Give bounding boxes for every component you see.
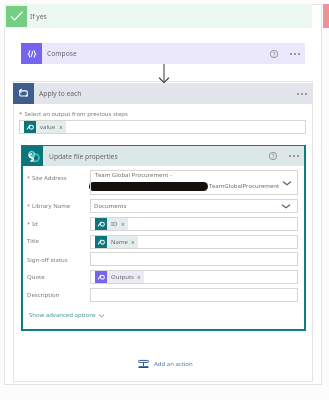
staticText: Title — [27, 237, 39, 245]
button[interactable]: Name — [90, 235, 298, 249]
staticText: Update file properties — [49, 152, 118, 161]
staticText: Name — [111, 238, 128, 246]
staticText: value — [40, 123, 56, 131]
button[interactable] — [90, 288, 298, 302]
staticText: * — [27, 220, 31, 227]
staticText: Description — [27, 291, 60, 299]
button[interactable]: Add an action — [138, 358, 193, 369]
staticText: Sign-off status — [27, 256, 68, 264]
button[interactable]: More options — [295, 88, 309, 100]
staticText: Quote — [27, 273, 45, 281]
staticText: ID — [111, 220, 118, 228]
staticText: Show advanced options — [29, 311, 96, 319]
staticText: × — [59, 123, 63, 132]
button[interactable]: Update file properties — [22, 146, 304, 166]
button[interactable]: Compose — [21, 43, 305, 64]
staticText: Team Global Procurement - — [95, 171, 172, 179]
button[interactable] — [90, 252, 298, 266]
button[interactable]: value — [19, 120, 306, 134]
staticText: × — [121, 220, 125, 229]
staticText: * — [27, 202, 31, 209]
staticText: × — [131, 238, 135, 247]
button[interactable]: Help — [268, 48, 280, 60]
button[interactable]: Apply to each — [13, 83, 312, 104]
staticText: Site Address — [32, 174, 67, 182]
button[interactable]: Documents — [90, 199, 298, 213]
button[interactable]: ID — [90, 217, 298, 231]
staticText: * — [19, 110, 23, 118]
staticText: Library Name — [32, 202, 71, 210]
staticText: × — [137, 273, 141, 282]
staticText: If yes — [30, 12, 47, 21]
button[interactable]: More options — [288, 48, 302, 60]
button[interactable]: Team Global Procurement - — [90, 170, 298, 195]
button[interactable]: More options — [287, 150, 301, 162]
staticText: TeamGlobalProcurement — [209, 182, 280, 190]
staticText: * — [27, 174, 31, 181]
staticText: Add an action — [154, 360, 193, 368]
button[interactable]: Outputs — [90, 270, 298, 284]
button[interactable]: Show advanced options — [29, 311, 104, 319]
button[interactable]: Help — [267, 150, 279, 162]
staticText: Apply to each — [39, 89, 82, 98]
button[interactable]: If yes — [4, 4, 312, 28]
staticText: Documents — [94, 202, 127, 210]
staticText: Outputs — [111, 273, 134, 281]
staticText: Id — [32, 220, 38, 228]
staticText: Select an output from previous steps — [23, 110, 128, 118]
staticText: Compose — [47, 49, 77, 58]
